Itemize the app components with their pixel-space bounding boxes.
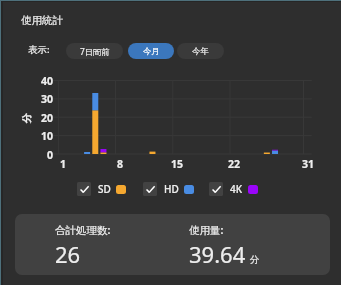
staticText: 20 xyxy=(41,111,54,125)
staticText: 分 xyxy=(19,113,32,123)
button[interactable]: 今月 xyxy=(128,43,174,59)
button[interactable]: 4K xyxy=(209,182,258,196)
staticText: 使用統計 xyxy=(21,14,63,27)
staticText: 39.64 xyxy=(189,239,246,269)
button[interactable]: 今年 xyxy=(177,43,224,59)
staticText: 1 xyxy=(60,157,67,171)
staticText: 10 xyxy=(41,129,54,143)
staticText: 使用量: xyxy=(189,223,224,237)
button[interactable]: HD xyxy=(143,182,194,196)
staticText: 8 xyxy=(117,157,124,171)
staticText: 30 xyxy=(41,92,54,106)
staticText: SD xyxy=(98,182,111,196)
button[interactable]: SD xyxy=(77,182,126,196)
staticText: 0 xyxy=(47,148,54,162)
staticText: 7日間前 xyxy=(80,46,110,57)
staticText: 合計処理数: xyxy=(55,223,111,237)
staticText: HD xyxy=(164,182,179,196)
staticText: 22 xyxy=(228,157,241,171)
staticText: 4K xyxy=(230,182,243,196)
staticText: 分 xyxy=(250,254,260,266)
button[interactable]: 7日間前 xyxy=(66,43,123,59)
staticText: 15 xyxy=(171,157,184,171)
staticText: 表示: xyxy=(28,43,50,56)
staticText: 26 xyxy=(55,239,81,269)
staticText: 40 xyxy=(41,74,54,88)
staticText: 今月 xyxy=(143,46,160,56)
staticText: 31 xyxy=(302,157,315,171)
staticText: 今年 xyxy=(192,46,209,56)
